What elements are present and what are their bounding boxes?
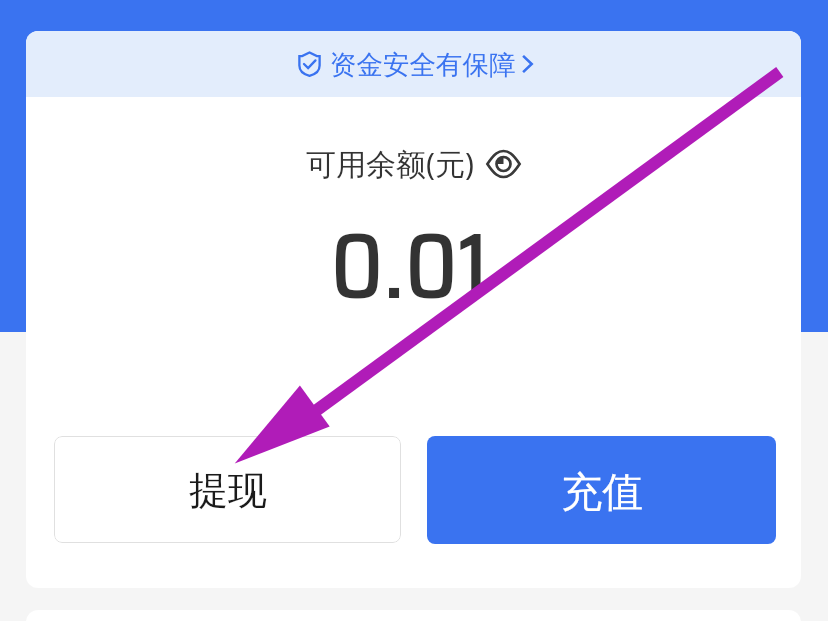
- button[interactable]: 充值: [427, 436, 776, 544]
- button[interactable]: 资金安全有保障: [26, 31, 801, 97]
- staticText: 0.01: [26, 194, 797, 339]
- staticText: 充值: [561, 467, 643, 519]
- staticText: 可用余额(元): [306, 143, 474, 184]
- staticText: 资金安全有保障: [330, 48, 516, 81]
- staticText: 提现: [189, 466, 267, 515]
- button[interactable]: Toggle balance visibility: [486, 150, 521, 178]
- button[interactable]: 提现: [54, 436, 401, 543]
